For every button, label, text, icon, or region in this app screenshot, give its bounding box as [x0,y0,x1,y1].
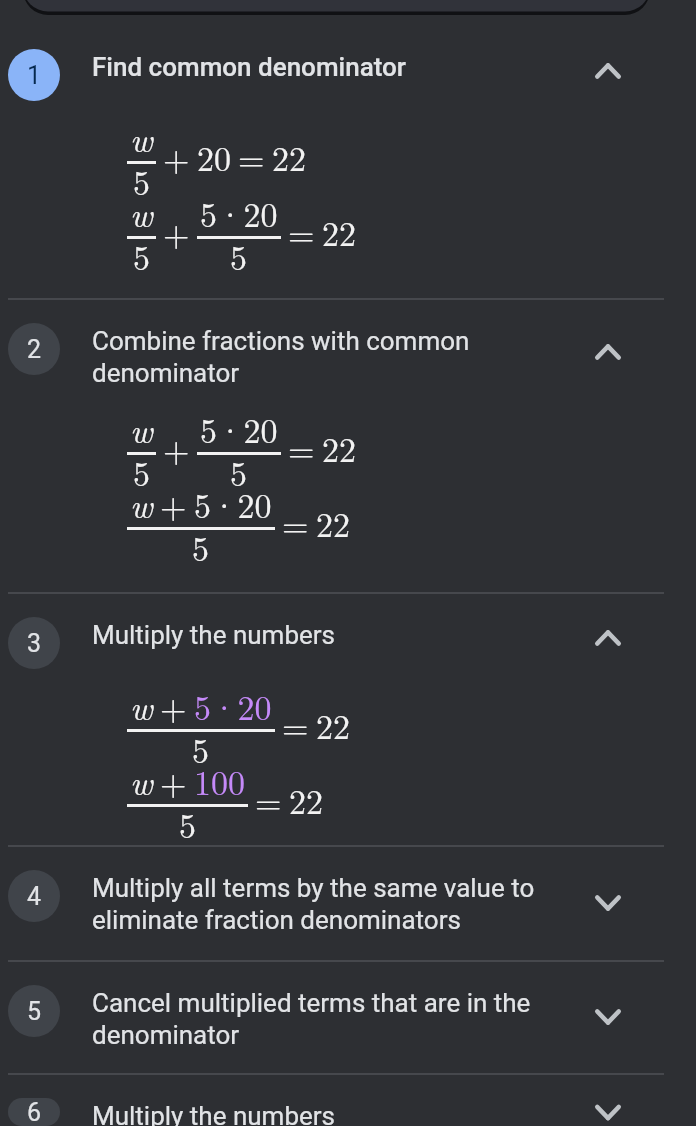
staticText: Multiply all terms by the same value to … [92,873,562,935]
staticText: = [288,424,315,472]
staticText: 5·20 [200,189,278,237]
staticText: Multiply the numbers [92,1101,562,1126]
staticText: + [160,757,187,805]
staticText: + [160,480,187,528]
staticText: 5·20 [194,682,272,730]
staticText: 20 [197,133,231,181]
staticText: Find common denominator [92,52,562,82]
other: Expand step [584,1099,632,1126]
staticText: = [282,701,309,749]
staticText: 22 [322,208,356,256]
staticText: 5 [133,448,150,496]
staticText: + [163,208,190,256]
staticText: Cancel multiplied terms that are in the … [92,988,562,1050]
other: Collapse step [584,614,632,662]
staticText: w [130,114,153,162]
staticText: w [130,480,153,528]
staticText: = [282,499,309,547]
staticText: w [130,405,153,453]
staticText: Multiply the numbers [92,620,562,650]
staticText: 2 [27,335,42,364]
button[interactable]: 4 [0,847,696,960]
staticText: 6 [27,1098,42,1126]
button[interactable]: 2 [0,300,696,402]
staticText: 5 [133,232,150,280]
staticText: 22 [272,133,306,181]
staticText: 5·20 [194,480,272,528]
staticText: 3 [27,629,42,658]
staticText: Combine fractions with common denominato… [92,326,562,388]
staticText: 5 [179,800,196,848]
staticText: 5 [27,997,42,1026]
staticText: = [255,776,282,824]
staticText: w [130,682,153,730]
staticText: 22 [316,499,350,547]
staticText: = [238,133,265,181]
other: Expand step [584,879,632,927]
staticText: + [163,133,190,181]
staticText: w [130,757,153,805]
staticText: 5 [192,725,209,773]
staticText: 100 [194,757,245,805]
button[interactable]: 1 [0,26,696,122]
staticText: 22 [289,776,323,824]
staticText: 5·20 [200,405,278,453]
button[interactable]: 3 [0,594,696,690]
staticText: + [163,424,190,472]
button[interactable]: 6 [0,1075,696,1126]
other: Expand step [584,993,632,1041]
staticText: 1 [27,61,42,90]
staticText: 5 [192,523,209,571]
staticText: w [130,189,153,237]
other: Collapse step [584,47,632,95]
staticText: 5 [230,448,247,496]
staticText: = [288,208,315,256]
staticText: 22 [322,424,356,472]
button[interactable]: 5 [0,962,696,1073]
staticText: 22 [316,701,350,749]
staticText: 5 [133,157,150,205]
staticText: 5 [230,232,247,280]
staticText: + [160,682,187,730]
other: Collapse step [584,328,632,376]
staticText: 4 [27,882,42,911]
